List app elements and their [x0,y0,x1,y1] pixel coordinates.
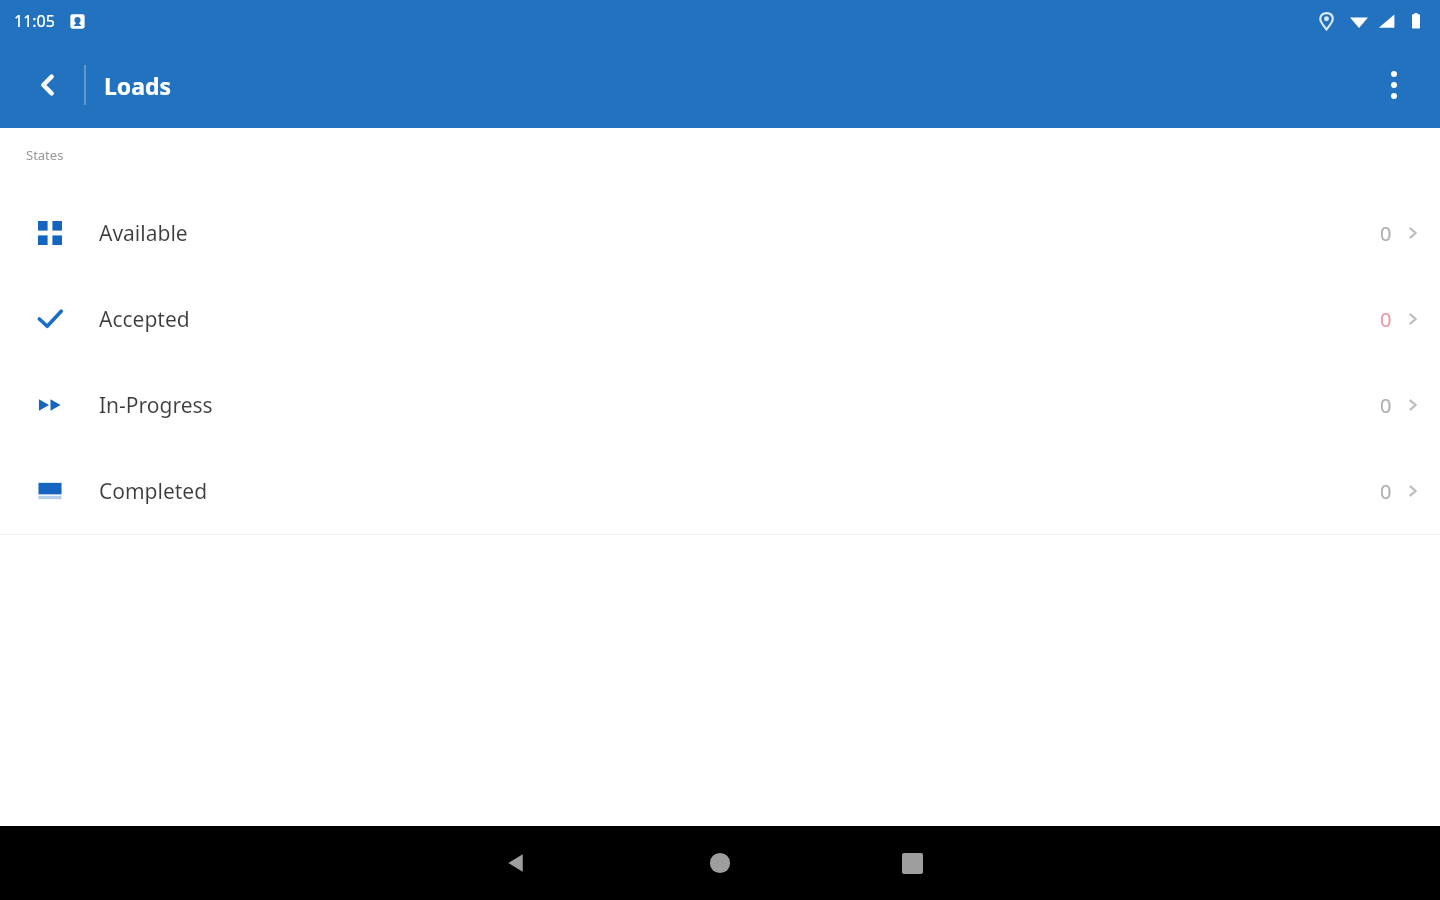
staticText: In-Progress [99,391,1380,420]
button[interactable]: Recent apps [880,831,944,895]
staticText: 0 [1380,306,1392,333]
staticText: Loads [104,70,172,101]
button[interactable]: Completed [0,448,1440,534]
staticText: Completed [99,477,1380,506]
staticText: Accepted [99,305,1380,334]
staticText: 0 [1380,392,1392,419]
button[interactable]: Available [0,190,1440,276]
staticText: States [26,146,64,164]
button[interactable]: More options [1368,59,1420,111]
staticText: 0 [1380,478,1392,505]
staticText: 11:05 [14,10,55,32]
button[interactable]: Back [22,59,74,111]
button[interactable]: Accepted [0,276,1440,362]
button[interactable]: Back [484,831,548,895]
staticText: 0 [1380,220,1392,247]
button[interactable]: Home [688,831,752,895]
button[interactable]: In-Progress [0,362,1440,448]
staticText: Available [99,219,1380,248]
